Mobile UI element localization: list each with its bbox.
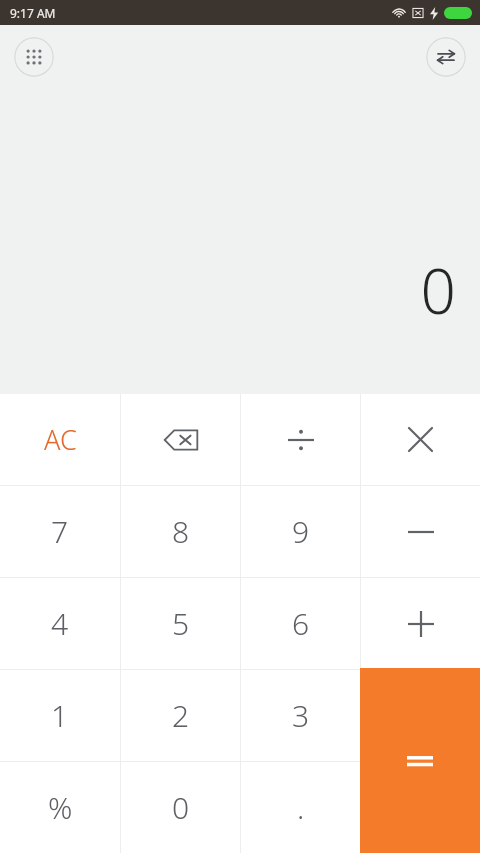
staticText: 1 — [51, 695, 69, 736]
button[interactable]: 7 — [0, 486, 120, 577]
button[interactable]: 2 — [121, 670, 240, 761]
button[interactable]: Unit converter — [426, 37, 466, 77]
staticText: . — [297, 787, 305, 828]
button[interactable]: Minus — [361, 486, 480, 577]
staticText: 9:17 AM — [10, 5, 56, 21]
button[interactable]: 9 — [241, 486, 360, 577]
button[interactable]: 4 — [0, 578, 120, 669]
button[interactable]: AC — [0, 394, 120, 485]
staticText: 6 — [292, 603, 310, 644]
staticText: 3 — [292, 695, 310, 736]
button[interactable]: Backspace — [121, 394, 240, 485]
button[interactable]: 5 — [121, 578, 240, 669]
button[interactable]: Keypad options — [14, 37, 54, 77]
staticText: 5 — [172, 603, 190, 644]
button[interactable]: Plus — [361, 578, 480, 669]
staticText: 0 — [172, 787, 190, 828]
button[interactable]: 6 — [241, 578, 360, 669]
button[interactable]: Divide — [241, 394, 360, 485]
staticText: % — [48, 787, 73, 828]
button[interactable]: . — [241, 762, 360, 853]
staticText: 7 — [51, 511, 69, 552]
staticText: 8 — [172, 511, 190, 552]
staticText: 0 — [420, 248, 456, 332]
staticText: 4 — [51, 603, 69, 644]
button[interactable]: Equals — [360, 668, 480, 853]
button[interactable]: 1 — [0, 670, 120, 761]
staticText: 9 — [292, 511, 310, 552]
button[interactable]: 0 — [121, 762, 240, 853]
button[interactable]: 3 — [241, 670, 360, 761]
staticText: AC — [44, 421, 77, 458]
button[interactable]: % — [0, 762, 120, 853]
button[interactable]: Multiply — [361, 394, 480, 485]
button[interactable]: 8 — [121, 486, 240, 577]
staticText: 2 — [172, 695, 190, 736]
